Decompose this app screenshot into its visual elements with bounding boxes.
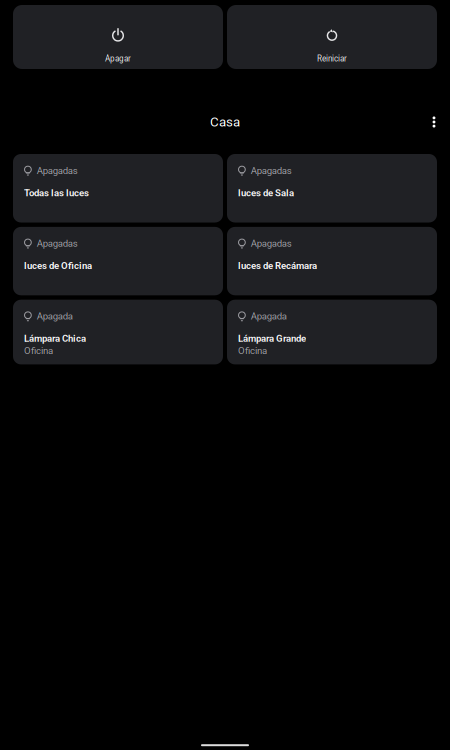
staticText: Casa xyxy=(210,114,240,130)
button[interactable]: Apagadas xyxy=(227,227,437,295)
staticText: Reiniciar xyxy=(317,54,347,63)
staticText: Apagada xyxy=(37,311,73,322)
button[interactable]: Apagada xyxy=(227,300,437,364)
button[interactable]: Apagadas xyxy=(227,154,437,222)
staticText: luces de Oficina xyxy=(24,260,92,271)
staticText: Oficina xyxy=(24,345,53,356)
button[interactable]: Apagada xyxy=(13,300,223,364)
staticText: Oficina xyxy=(238,345,267,356)
staticText: Lámpara Chica xyxy=(24,333,86,344)
staticText: Apagada xyxy=(251,311,287,322)
button[interactable]: More options xyxy=(419,107,449,137)
staticText: Apagadas xyxy=(251,165,292,176)
button[interactable]: Apagar xyxy=(13,5,223,69)
staticText: Apagadas xyxy=(37,165,78,176)
button[interactable]: Apagadas xyxy=(13,227,223,295)
staticText: luces de Sala xyxy=(238,187,294,199)
staticText: Lámpara Grande xyxy=(238,333,306,344)
staticText: Apagadas xyxy=(251,238,292,249)
staticText: Apagar xyxy=(105,54,131,63)
staticText: Apagadas xyxy=(37,238,78,249)
staticText: Todas las luces xyxy=(24,187,89,199)
button[interactable]: Apagadas xyxy=(13,154,223,222)
button[interactable]: Reiniciar xyxy=(227,5,437,69)
staticText: luces de Recámara xyxy=(238,260,317,271)
